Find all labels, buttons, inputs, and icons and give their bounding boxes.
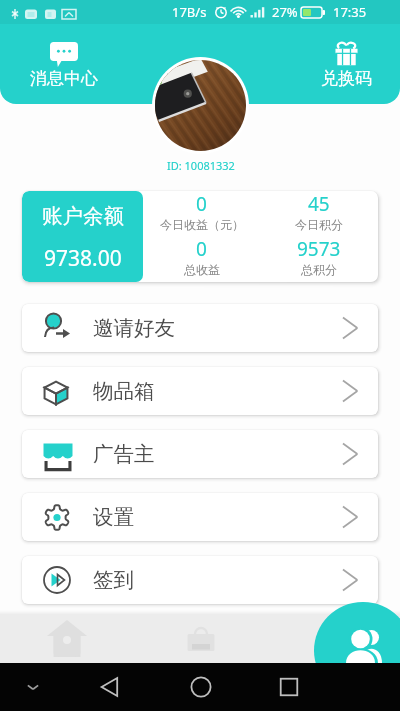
button[interactable]: Profile bbox=[314, 602, 400, 699]
button[interactable]: 物品箱 bbox=[22, 367, 378, 415]
staticText: 17:35 bbox=[333, 3, 367, 21]
button[interactable]: 签到 bbox=[22, 556, 378, 604]
staticText: 签到 bbox=[93, 567, 134, 593]
button[interactable]: 设置 bbox=[22, 493, 378, 541]
staticText: 兑换码 bbox=[321, 68, 372, 89]
button[interactable]: Home bbox=[191, 677, 211, 697]
button[interactable]: 邀请好友 bbox=[22, 304, 378, 352]
staticText: 设置 bbox=[93, 504, 134, 530]
button[interactable]: 0 bbox=[143, 236, 260, 277]
button[interactable]: 0 bbox=[143, 191, 260, 232]
button[interactable]: 兑换码 bbox=[311, 38, 382, 93]
staticText: 9573 bbox=[297, 236, 341, 262]
staticText: 45 bbox=[308, 191, 330, 217]
button[interactable]: 45 bbox=[260, 191, 378, 232]
staticText: 今日收益（元） bbox=[160, 217, 244, 232]
button[interactable]: 9573 bbox=[260, 236, 378, 277]
staticText: 消息中心 bbox=[30, 68, 98, 89]
staticText: 0 bbox=[196, 236, 207, 262]
button[interactable]: Back bbox=[100, 677, 120, 697]
staticText: 账户余额 bbox=[42, 203, 124, 229]
staticText: 广告主 bbox=[93, 441, 155, 467]
button[interactable]: Tasks bbox=[134, 614, 267, 663]
button[interactable]: Recents bbox=[280, 678, 298, 696]
staticText: 总积分 bbox=[301, 262, 337, 277]
button[interactable]: 广告主 bbox=[22, 430, 378, 478]
staticText: 今日积分 bbox=[295, 217, 343, 232]
staticText: 总收益 bbox=[184, 262, 220, 277]
staticText: ID: 10081332 bbox=[167, 158, 235, 173]
staticText: 17B/s bbox=[172, 3, 207, 21]
staticText: 27% bbox=[272, 3, 298, 21]
button[interactable]: Avatar bbox=[155, 60, 246, 151]
button[interactable]: 消息中心 bbox=[20, 38, 108, 93]
staticText: 9738.00 bbox=[44, 244, 122, 273]
button[interactable]: Home bbox=[0, 614, 134, 663]
staticText: 0 bbox=[196, 191, 207, 217]
staticText: 物品箱 bbox=[93, 378, 155, 404]
button[interactable]: 账户余额 bbox=[22, 191, 143, 282]
staticText: 邀请好友 bbox=[93, 315, 175, 341]
